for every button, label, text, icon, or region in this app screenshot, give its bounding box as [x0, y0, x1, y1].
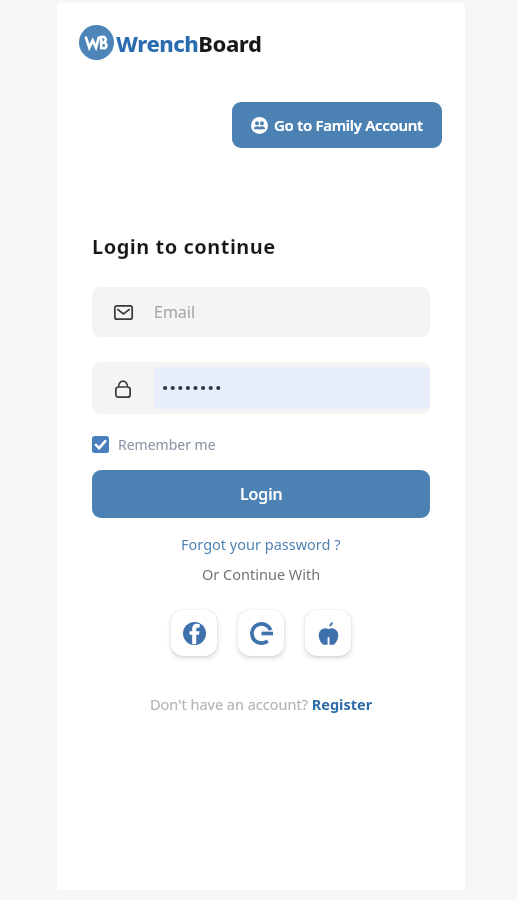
staticText: Login [240, 483, 283, 505]
button[interactable]: Login [92, 470, 430, 518]
button[interactable]: Email [92, 287, 430, 337]
button[interactable]: Remember me [92, 435, 216, 454]
staticText: Email [154, 301, 196, 323]
button[interactable]: Sign in with Facebook [171, 610, 217, 656]
button[interactable]: Forgot your password ? [173, 532, 349, 556]
button[interactable]: Don't have an account? Register [144, 692, 379, 716]
staticText: Go to Family Account [274, 115, 423, 135]
button[interactable]: Go to Family Account [232, 102, 442, 148]
staticText: Remember me [118, 435, 216, 454]
button[interactable]: Sign in with Google [238, 610, 284, 656]
staticText: WrenchBoard [116, 28, 262, 58]
button[interactable]: Sign in with Apple [305, 610, 351, 656]
staticText: Or Continue With [202, 564, 321, 584]
staticText: Login to continue [92, 233, 276, 260]
button[interactable] [92, 362, 430, 414]
